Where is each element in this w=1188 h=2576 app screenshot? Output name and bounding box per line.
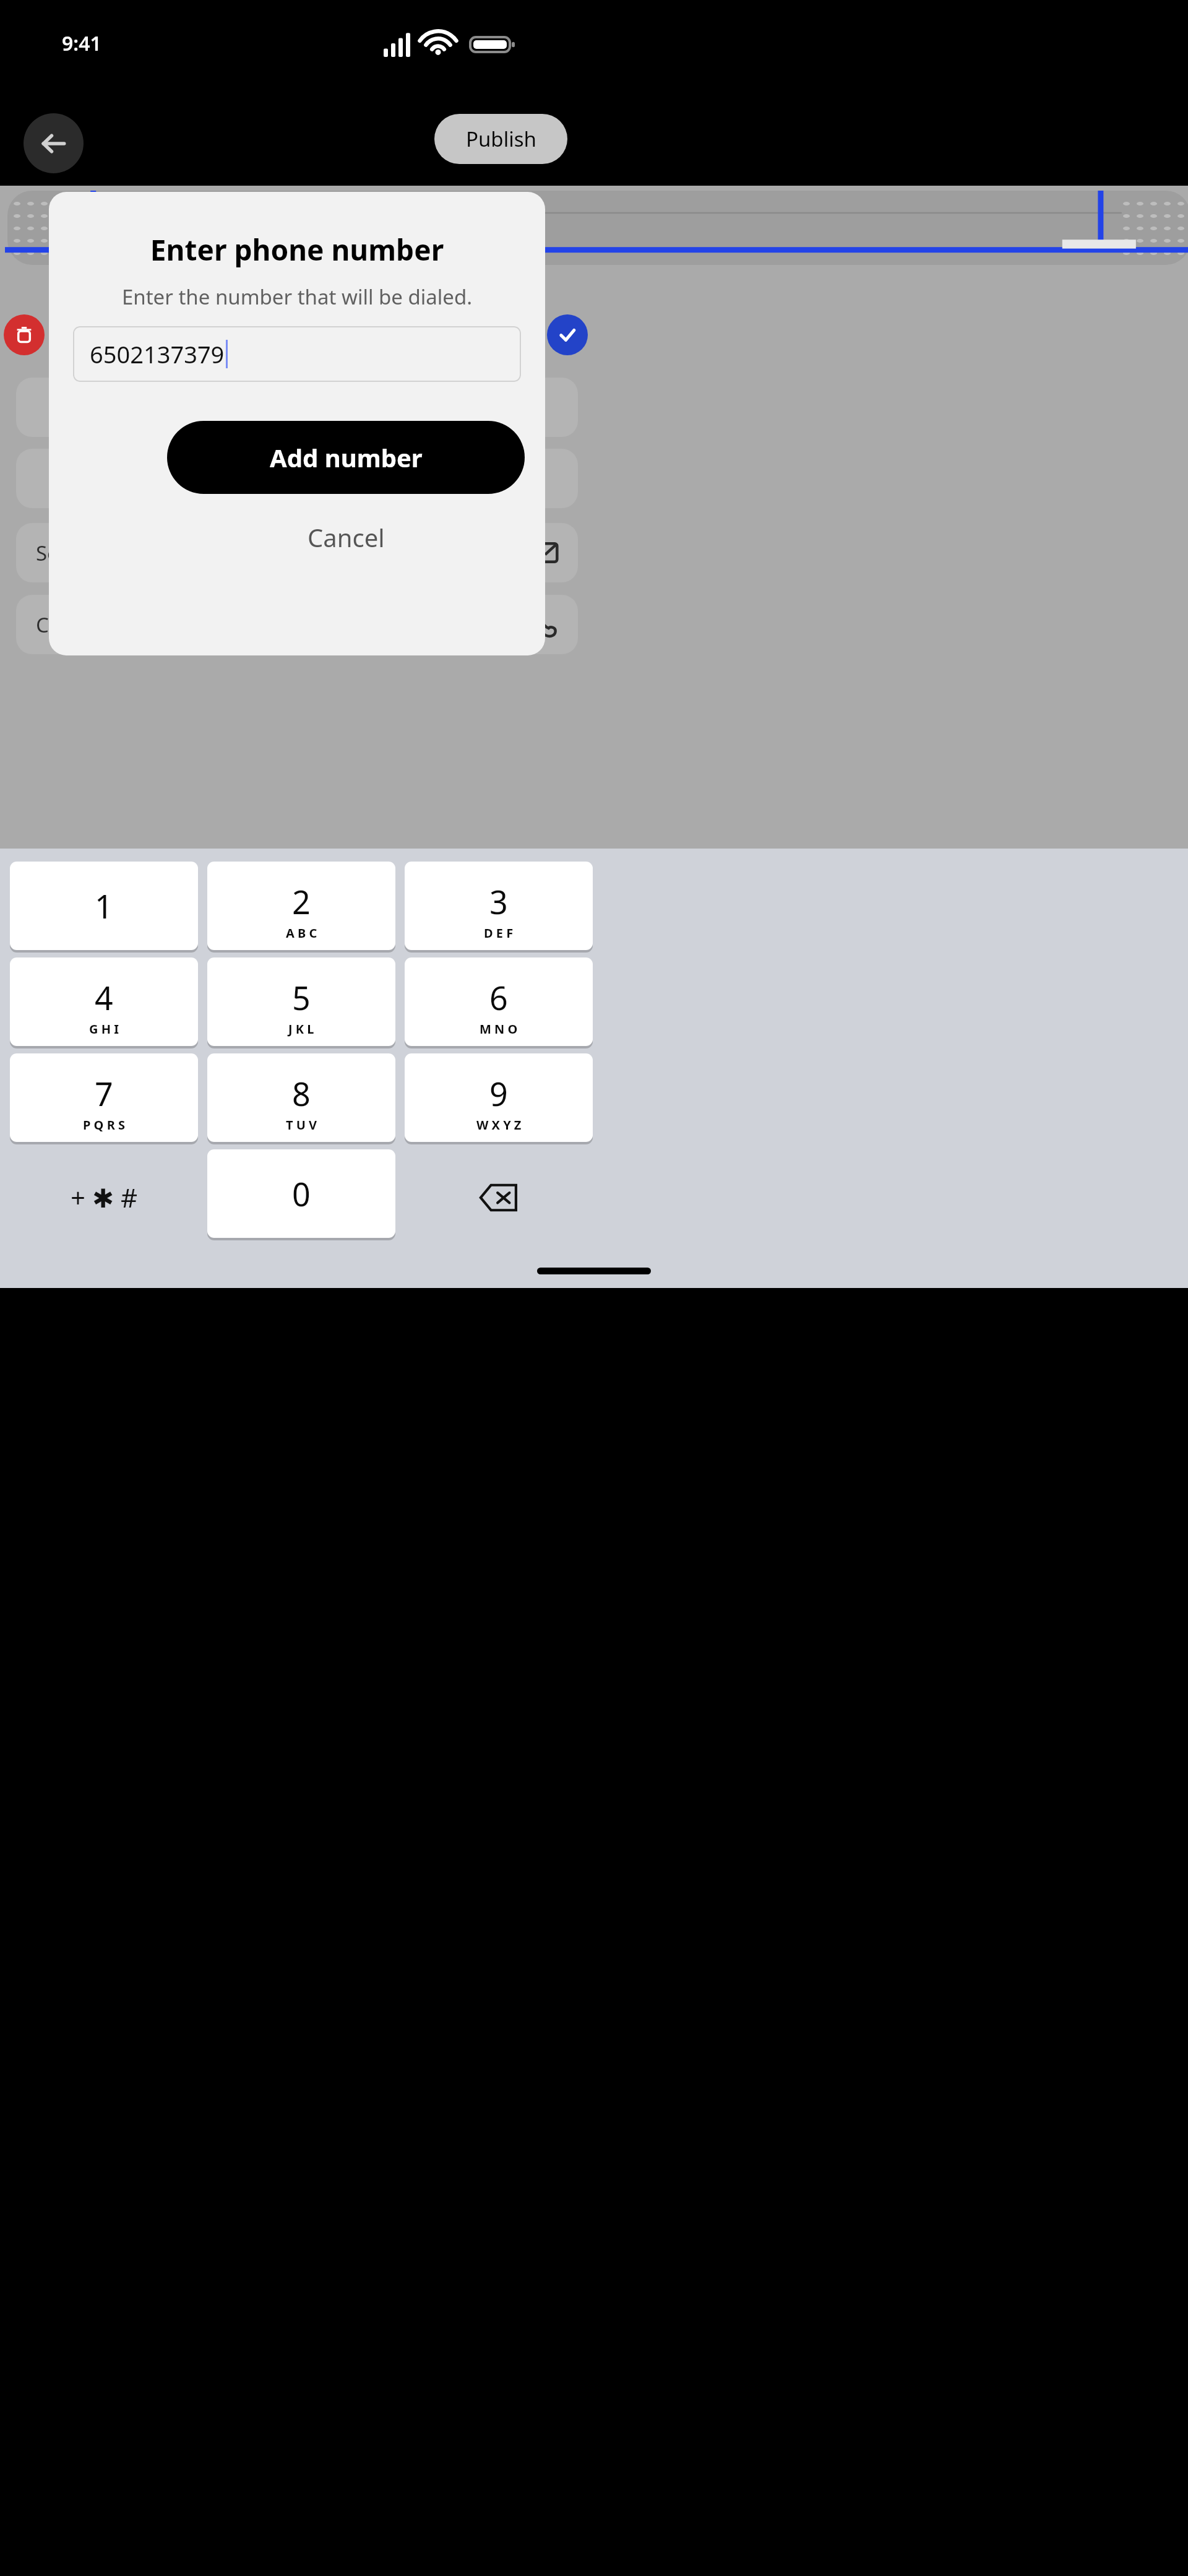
staticText: Publish (466, 125, 536, 153)
staticText: 2 (292, 880, 311, 923)
button[interactable]: Send Email (16, 523, 578, 582)
staticText: 5 (292, 975, 311, 1019)
staticText: 6502137379 (90, 338, 225, 370)
button[interactable]: Add number (167, 421, 525, 494)
button[interactable] (16, 449, 578, 508)
staticText: D E F (484, 925, 514, 941)
staticText: W X Y Z (476, 1117, 522, 1133)
button[interactable]: 5 (207, 957, 395, 1046)
staticText: T U V (286, 1117, 317, 1133)
button[interactable]: Call Phone Number (16, 595, 578, 654)
button[interactable]: 7 (10, 1053, 198, 1142)
staticText: 7 (95, 1071, 113, 1115)
staticText: M N O (480, 1021, 518, 1037)
button[interactable]: 6502137379 (73, 326, 521, 382)
button[interactable]: Confirm (547, 314, 588, 355)
staticText: 6 (489, 975, 508, 1019)
staticText: Add number (270, 441, 423, 474)
staticText: J K L (288, 1021, 314, 1037)
button[interactable]: Delete (4, 314, 45, 355)
button[interactable]: 9 (405, 1053, 593, 1142)
button[interactable]: Backspace (405, 1149, 593, 1245)
staticText: 1 (95, 884, 113, 928)
staticText: 9 (489, 1071, 508, 1115)
button[interactable]: 0 (207, 1149, 395, 1238)
staticText: G H I (89, 1021, 119, 1037)
button[interactable]: 3 (405, 862, 593, 950)
staticText: Send Email (36, 539, 142, 567)
button[interactable]: Back (24, 113, 84, 173)
button[interactable]: 1 (10, 862, 198, 950)
staticText: 4 (95, 975, 113, 1019)
button[interactable]: 8 (207, 1053, 395, 1142)
staticText: Cancel (308, 521, 385, 554)
button[interactable]: 4 (10, 957, 198, 1046)
staticText: 9:41 (62, 30, 101, 57)
staticText: P Q R S (83, 1117, 125, 1133)
staticText: Enter the number that will be dialed. (49, 283, 545, 311)
button[interactable]: Symbols (10, 1149, 198, 1245)
button[interactable]: Cancel (167, 506, 525, 568)
button[interactable]: 2 (207, 862, 395, 950)
staticText: 8 (292, 1071, 311, 1115)
button[interactable] (16, 378, 578, 437)
staticText: A B C (286, 925, 317, 941)
staticText: + ✱ # (71, 1180, 138, 1215)
staticText: Call Phone Number (36, 611, 223, 639)
staticText: 0 (292, 1172, 311, 1216)
staticText: 3 (489, 880, 508, 923)
staticText: Enter phone number (49, 230, 545, 269)
button[interactable]: 6 (405, 957, 593, 1046)
button[interactable]: Publish (434, 114, 567, 164)
